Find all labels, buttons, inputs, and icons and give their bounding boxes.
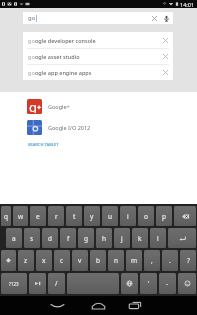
staticText: u — [108, 212, 113, 221]
staticText: - — [166, 279, 169, 288]
staticText: go — [28, 53, 35, 60]
staticText: go — [28, 14, 36, 22]
staticText: g — [29, 99, 37, 113]
button[interactable]: d — [42, 228, 58, 248]
button[interactable]: o — [138, 206, 154, 226]
staticText: 14:01 — [180, 1, 195, 8]
button[interactable]: Remove suggestion — [158, 64, 172, 80]
button[interactable]: Hide keyboard — [45, 296, 70, 315]
button[interactable]: r — [48, 206, 64, 226]
button[interactable]: ? — [180, 250, 196, 271]
button[interactable]: m — [126, 250, 142, 271]
button[interactable]: y — [84, 206, 100, 226]
staticText: x — [42, 256, 46, 265]
button[interactable]: l — [150, 228, 166, 248]
staticText: p — [162, 212, 166, 221]
staticText: a — [12, 234, 16, 243]
staticText: f — [67, 234, 70, 243]
staticText: ? — [187, 256, 190, 265]
staticText: e — [36, 212, 40, 221]
staticText: y — [90, 212, 94, 221]
staticText: Google I/O 2012 — [48, 124, 91, 131]
button[interactable]: Enter — [168, 228, 196, 248]
button[interactable]: ' — [140, 273, 157, 294]
button[interactable]: Remove suggestion — [158, 32, 172, 48]
staticText: b — [96, 256, 100, 265]
button[interactable]: - — [159, 273, 176, 294]
button[interactable]: / — [48, 273, 65, 294]
button[interactable]: Voice search — [160, 12, 173, 24]
button[interactable]: j — [114, 228, 130, 248]
button[interactable]: go — [23, 12, 173, 24]
button[interactable]: t — [66, 206, 82, 226]
staticText: o — [144, 212, 148, 221]
button[interactable]: Tab — [29, 273, 46, 294]
staticText: , — [151, 256, 153, 265]
button[interactable]: g — [78, 228, 94, 248]
staticText: ogle developer console — [35, 37, 96, 44]
button[interactable]: Remove suggestion — [158, 48, 172, 64]
button[interactable]: Change language — [121, 273, 138, 294]
button[interactable]: c — [54, 250, 70, 271]
button[interactable]: u — [102, 206, 118, 226]
button[interactable]: p — [156, 206, 172, 226]
button[interactable]: s — [24, 228, 40, 248]
staticText: t — [73, 212, 76, 221]
button[interactable]: Emoji — [178, 273, 196, 294]
staticText: h — [102, 234, 107, 243]
button[interactable]: Backspace — [174, 206, 196, 226]
staticText: SEARCH TABLET — [28, 142, 59, 148]
staticText: i — [127, 212, 129, 221]
button[interactable]: q — [1, 206, 11, 226]
staticText: go — [28, 69, 35, 76]
button[interactable]: . — [162, 250, 178, 271]
button[interactable]: z — [18, 250, 34, 271]
staticText: k — [138, 234, 142, 243]
button[interactable]: Clear query — [149, 12, 160, 24]
staticText: ogle app engine apps — [35, 69, 92, 76]
button[interactable]: f — [60, 228, 76, 248]
staticText: l — [157, 234, 159, 243]
button[interactable]: w — [13, 206, 28, 226]
staticText: s — [30, 234, 34, 243]
button[interactable]: go — [23, 48, 173, 64]
button[interactable]: go — [23, 32, 173, 48]
button[interactable]: e — [30, 206, 46, 226]
button[interactable]: v — [72, 250, 88, 271]
staticText: ?123 — [9, 281, 19, 287]
staticText: / — [55, 279, 58, 288]
staticText: v — [78, 256, 82, 265]
button[interactable]: SEARCH TABLET — [22, 140, 65, 150]
staticText: q — [4, 212, 8, 221]
button[interactable]: b — [90, 250, 106, 271]
staticText: r — [55, 212, 58, 221]
staticText: j — [121, 234, 123, 243]
staticText: . — [169, 256, 171, 265]
staticText: g — [84, 234, 88, 243]
staticText: m — [131, 256, 138, 265]
button[interactable]: Shift — [1, 250, 16, 271]
staticText: go — [28, 37, 35, 44]
button[interactable]: g — [0, 99, 197, 114]
button[interactable]: n — [108, 250, 124, 271]
button[interactable]: a — [6, 228, 22, 248]
button[interactable]: Space — [67, 273, 119, 294]
staticText: z — [24, 256, 28, 265]
staticText: ' — [148, 279, 150, 288]
button[interactable]: x — [36, 250, 52, 271]
button[interactable]: k — [132, 228, 148, 248]
button[interactable]: go — [23, 64, 173, 80]
button[interactable]: Recent apps — [122, 296, 147, 315]
button[interactable]: Google I/O 2012 — [0, 120, 197, 135]
button[interactable]: Home — [86, 296, 111, 315]
staticText: ogle asset studio — [35, 53, 80, 60]
staticText: c — [60, 256, 64, 265]
button[interactable]: h — [96, 228, 112, 248]
button[interactable]: i — [120, 206, 136, 226]
button[interactable]: , — [144, 250, 160, 271]
staticText: Google+ — [48, 103, 70, 110]
staticText: w — [18, 212, 24, 221]
staticText: d — [48, 234, 52, 243]
button[interactable]: ?123 — [1, 273, 27, 294]
staticText: n — [114, 256, 119, 265]
